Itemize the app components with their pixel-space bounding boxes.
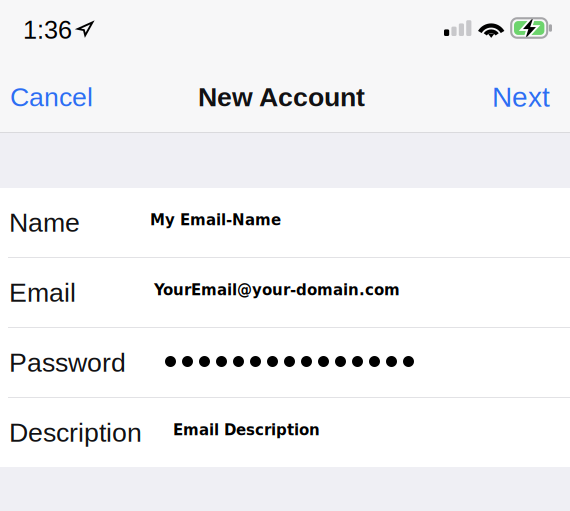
button[interactable]: Next xyxy=(482,70,560,124)
staticText: 1:36 xyxy=(23,16,72,44)
staticText: New Account xyxy=(198,82,365,112)
staticText: YourEmail@your-domain.com xyxy=(154,280,400,299)
button[interactable]: Cancel xyxy=(1,71,102,123)
staticText: Email xyxy=(9,278,76,307)
staticText: Description xyxy=(9,418,142,447)
staticText: Password xyxy=(9,348,126,377)
button[interactable]: Email xyxy=(0,258,570,327)
staticText: Email Description xyxy=(173,420,320,439)
button[interactable]: Name xyxy=(0,188,570,257)
button[interactable]: Password xyxy=(0,328,570,397)
button[interactable]: Description xyxy=(0,398,570,467)
staticText: My Email-Name xyxy=(150,210,281,229)
staticText: Name xyxy=(9,208,80,237)
staticText: Next xyxy=(492,81,550,113)
staticText: Cancel xyxy=(10,82,93,112)
